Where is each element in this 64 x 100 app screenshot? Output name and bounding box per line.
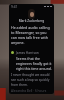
staticText: 9:41	[11, 5, 18, 9]
button[interactable]: Profile photo	[28, 9, 35, 19]
staticText: James Harrison	[16, 51, 39, 55]
staticText: Mark Zuckerberg	[11, 19, 52, 23]
staticText: Alexandra Bell · 6 hours ago	[11, 89, 52, 94]
staticText: He added audio calling to Messenger, so …	[11, 25, 52, 45]
staticText: I never thought we would see such a leap…	[11, 73, 52, 87]
button[interactable]: James Harrison	[11, 51, 52, 71]
staticText: Seems that the engineers finally got it …	[16, 56, 52, 71]
